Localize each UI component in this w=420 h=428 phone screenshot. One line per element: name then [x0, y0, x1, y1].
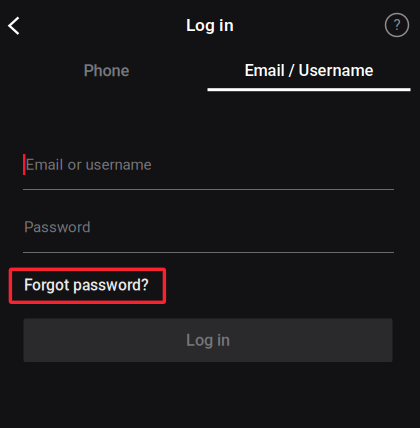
staticText: Phone: [83, 61, 129, 80]
staticText: ?: [393, 16, 400, 34]
button[interactable]: Back: [0, 4, 32, 48]
button[interactable]: Forgot password?: [10, 269, 164, 302]
button[interactable]: Log in: [23, 318, 392, 362]
button[interactable]: Phone: [3, 49, 210, 93]
button[interactable]: Email / Username: [207, 48, 410, 92]
staticText: Forgot password?: [24, 276, 149, 294]
staticText: Email / Username: [244, 61, 373, 80]
staticText: Password: [24, 218, 90, 236]
staticText: Email or username: [25, 156, 151, 173]
button[interactable]: Help: [379, 3, 415, 47]
staticText: Log in: [186, 331, 230, 350]
staticText: Log in: [186, 15, 234, 35]
